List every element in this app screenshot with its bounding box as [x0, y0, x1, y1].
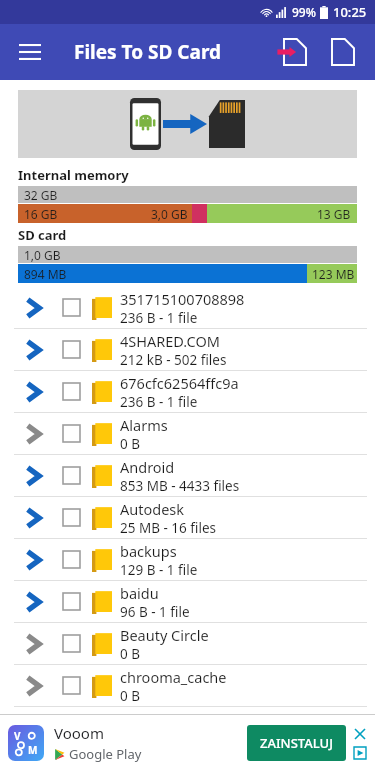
staticText: 4SHARED.COM: [120, 331, 220, 351]
button[interactable]: Select 351715100708898: [0, 287, 375, 328]
staticText: 351715100708898: [120, 289, 245, 309]
staticText: 32 GB: [24, 187, 58, 203]
button[interactable]: Select Android: [63, 467, 80, 484]
button[interactable]: Move files: [273, 30, 317, 74]
button[interactable]: Close ad: [352, 726, 367, 741]
staticText: 0 B: [120, 645, 141, 663]
staticText: 99%: [292, 4, 316, 20]
staticText: Beauty Circle: [120, 625, 209, 645]
staticText: 16 GB: [24, 206, 58, 222]
button[interactable]: Select 4SHARED.COM: [0, 329, 375, 370]
staticText: 0 B: [120, 687, 141, 705]
button[interactable]: Select chrooma_cache: [63, 677, 80, 694]
staticText: 129 B - 1 file: [120, 561, 198, 579]
button[interactable]: Select Beauty Circle: [0, 623, 375, 664]
button[interactable]: Select 351715100708898: [63, 299, 80, 316]
staticText: 676cfc62564ffc9a: [120, 373, 239, 393]
button[interactable]: Select Autodesk: [0, 497, 375, 538]
staticText: SD card: [18, 226, 67, 244]
staticText: Files To SD Card: [74, 39, 222, 65]
staticText: Vooom: [54, 723, 104, 743]
staticText: 1,0 GB: [24, 247, 61, 263]
staticText: V: [14, 729, 21, 743]
button[interactable]: Select com.facebook.orca: [63, 719, 80, 736]
button[interactable]: Select chrooma_cache: [0, 665, 375, 706]
button[interactable]: Select backups: [63, 551, 80, 568]
button[interactable]: Select Beauty Circle: [63, 635, 80, 652]
staticText: backups: [120, 541, 177, 561]
staticText: 123 MB: [312, 266, 355, 282]
staticText: 25 MB - 16 files: [120, 519, 216, 537]
staticText: Android: [120, 457, 175, 477]
button[interactable]: Select baidu: [0, 581, 375, 622]
button[interactable]: Select backups: [0, 539, 375, 580]
button[interactable]: Select Alarms: [0, 413, 375, 454]
staticText: 853 MB - 4433 files: [120, 477, 240, 495]
button[interactable]: Select 676cfc62564ffc9a: [63, 383, 80, 400]
button[interactable]: Ad info: [352, 745, 367, 760]
staticText: 236 B - 1 file: [120, 309, 198, 327]
staticText: chrooma_cache: [120, 667, 227, 687]
button[interactable]: ZAINSTALUJ: [247, 725, 346, 761]
staticText: Alarms: [120, 415, 168, 435]
button[interactable]: Select baidu: [63, 593, 80, 610]
button[interactable]: Select Alarms: [63, 425, 80, 442]
button[interactable]: Vooom app icon: [8, 725, 44, 761]
staticText: Google Play: [69, 745, 142, 763]
staticText: baidu: [120, 583, 159, 603]
staticText: 13 GB: [317, 206, 351, 222]
staticText: 212 kB - 502 files: [120, 351, 227, 369]
staticText: 96 B - 1 file: [120, 603, 190, 621]
staticText: 894 MB: [24, 266, 67, 282]
staticText: M: [28, 743, 38, 757]
button[interactable]: Select Android: [0, 455, 375, 496]
staticText: 236 B - 1 file: [120, 393, 198, 411]
button[interactable]: Select Autodesk: [63, 509, 80, 526]
button[interactable]: Select 676cfc62564ffc9a: [0, 371, 375, 412]
button[interactable]: Menu: [8, 30, 52, 74]
staticText: 3,0 GB: [151, 206, 188, 222]
staticText: com.facebook.orca: [120, 718, 250, 738]
button[interactable]: New file: [321, 30, 365, 74]
staticText: ZAINSTALUJ: [260, 734, 333, 752]
button[interactable]: Select com.facebook.orca: [0, 707, 375, 748]
staticText: Autodesk: [120, 499, 185, 519]
staticText: 10:25: [333, 3, 367, 21]
staticText: 0 B: [120, 435, 141, 453]
staticText: Internal memory: [18, 166, 129, 184]
button[interactable]: Select 4SHARED.COM: [63, 341, 80, 358]
